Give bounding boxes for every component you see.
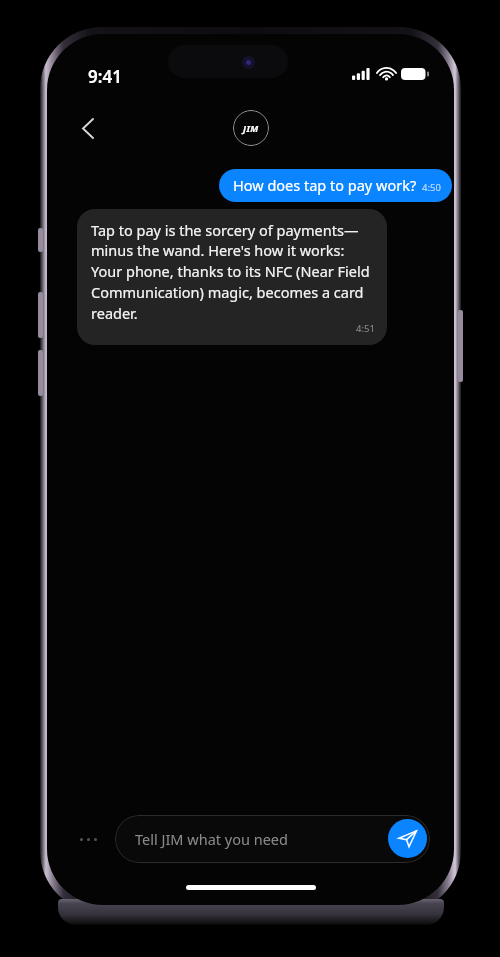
button[interactable]: Send xyxy=(388,819,427,858)
staticText: How does tap to pay work? xyxy=(233,175,417,195)
button[interactable]: Back xyxy=(65,106,109,150)
staticText: 9:41 xyxy=(88,65,122,88)
staticText: JIM xyxy=(243,122,259,134)
button[interactable]: Tap to pay is the sorcery of payments—mi… xyxy=(77,209,387,345)
staticText: Tell JIM what you need xyxy=(135,829,288,849)
staticText: 4:50 xyxy=(422,181,441,194)
button[interactable]: Tell JIM what you need xyxy=(115,815,430,863)
button[interactable]: How does tap to pay work? xyxy=(219,169,452,202)
staticText: 4:51 xyxy=(356,322,375,335)
button[interactable]: More options xyxy=(67,827,109,851)
staticText: Tap to pay is the sorcery of payments—mi… xyxy=(91,220,375,324)
button[interactable]: JIM xyxy=(233,110,269,146)
